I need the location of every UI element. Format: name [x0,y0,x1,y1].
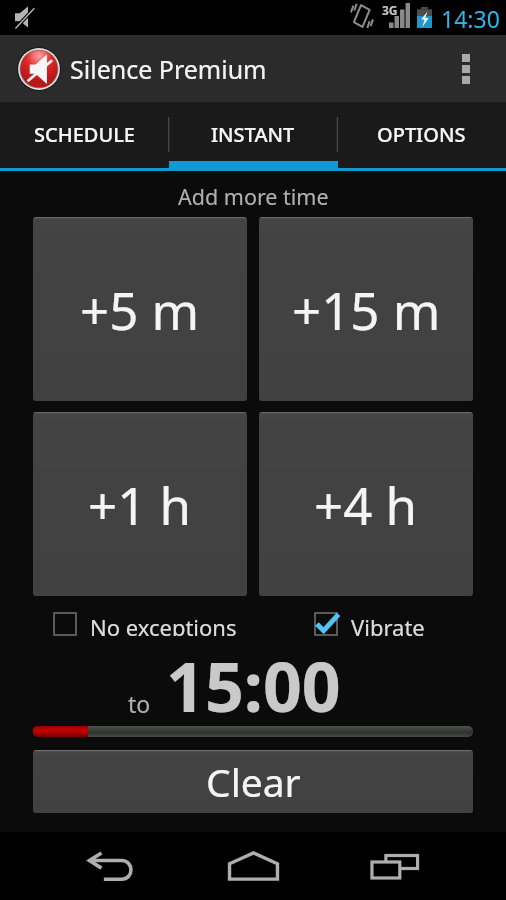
button[interactable]: Vibrate [314,612,425,636]
button[interactable]: INSTANT [168,102,337,170]
staticText: +15 m [292,275,441,344]
button[interactable]: No exceptions [53,612,237,636]
staticText: 15:00 [166,639,341,732]
button[interactable]: Home [205,832,301,900]
staticText: +5 m [80,275,200,344]
button[interactable]: +5 m [33,217,247,401]
staticText: Silence Premium [70,52,267,86]
button[interactable]: +1 h [33,412,247,596]
staticText: Add more time [178,182,329,211]
staticText: INSTANT [211,121,295,148]
button[interactable]: SCHEDULE [0,102,168,170]
button[interactable]: +15 m [259,217,473,401]
staticText: No exceptions [90,612,237,636]
staticText: Clear [206,755,301,808]
button[interactable]: More options [440,35,492,102]
button[interactable]: Recent apps [347,832,443,900]
staticText: +4 h [314,470,418,539]
staticText: SCHEDULE [34,121,135,148]
button[interactable]: Back [64,832,160,900]
staticText: 3G [382,2,398,18]
button[interactable]: OPTIONS [337,102,506,170]
button[interactable]: Clear [33,750,473,813]
staticText: to [128,688,151,719]
staticText: Vibrate [351,612,425,636]
staticText: OPTIONS [377,121,466,148]
staticText: 14:30 [441,3,500,34]
staticText: +1 h [88,470,192,539]
button[interactable]: +4 h [259,412,473,596]
